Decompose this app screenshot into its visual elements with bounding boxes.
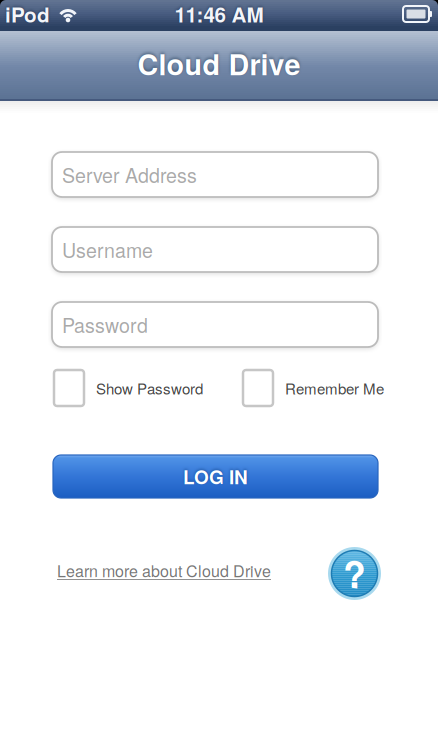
button[interactable]: Username — [52, 227, 378, 272]
staticText: 11:46 AM — [174, 0, 263, 29]
button[interactable]: Password — [52, 302, 378, 347]
staticText: Server Address — [62, 160, 197, 189]
staticText: iPod — [5, 0, 50, 29]
staticText: Password — [62, 310, 148, 339]
staticText: LOG IN — [183, 463, 248, 490]
button[interactable]: Help — [328, 547, 381, 600]
button[interactable]: Learn more about Cloud Drive — [57, 559, 271, 582]
staticText: Cloud Drive — [137, 43, 300, 84]
button[interactable]: LOG IN — [53, 455, 378, 498]
staticText: Show Password — [96, 377, 203, 399]
button[interactable]: Show Password — [54, 370, 203, 406]
staticText: Learn more about Cloud Drive — [57, 559, 271, 582]
staticText: Username — [62, 235, 153, 264]
staticText: ? — [343, 546, 366, 599]
button[interactable]: Server Address — [52, 152, 378, 197]
button[interactable]: Remember Me — [243, 370, 384, 406]
staticText: Remember Me — [285, 377, 384, 399]
